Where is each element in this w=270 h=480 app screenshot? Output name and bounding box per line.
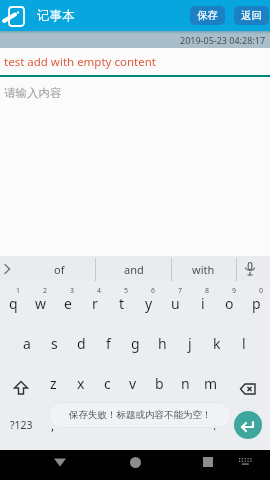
button[interactable]: , [42, 403, 64, 447]
button[interactable]: l [230, 323, 257, 363]
button[interactable]: u [162, 283, 189, 323]
button[interactable]: h [149, 323, 176, 363]
staticText: of [54, 262, 65, 277]
staticText: w [35, 294, 47, 313]
staticText: m [204, 374, 218, 393]
staticText: and [124, 262, 144, 277]
staticText: j [188, 334, 192, 353]
staticText: d [77, 334, 86, 353]
button[interactable]: . [204, 403, 226, 447]
staticText: test add with empty content [4, 54, 156, 70]
button[interactable]: of [22, 256, 96, 282]
button[interactable]: f [95, 323, 122, 363]
staticText: 9 [232, 286, 237, 296]
button[interactable]: 保存 [190, 6, 225, 25]
staticText: g [131, 334, 140, 353]
staticText: 保存失败！标题或内容不能为空！ [69, 409, 212, 421]
button[interactable]: t [108, 283, 135, 323]
button[interactable] [42, 450, 78, 480]
button[interactable]: e [54, 283, 81, 323]
staticText: y [145, 294, 153, 313]
staticText: h [158, 334, 167, 353]
button[interactable]: c [94, 363, 120, 403]
button[interactable]: s [41, 323, 68, 363]
button[interactable]: z [40, 363, 67, 403]
staticText: 3 [70, 286, 75, 296]
button[interactable]: w [27, 283, 54, 323]
staticText: 2 [43, 286, 48, 296]
staticText: b [155, 374, 164, 393]
button[interactable] [244, 262, 256, 277]
staticText: 7 [178, 286, 183, 296]
button[interactable]: p [243, 283, 270, 323]
staticText: . [213, 417, 217, 433]
button[interactable]: j [176, 323, 203, 363]
staticText: 8 [205, 286, 210, 296]
button[interactable]: and [96, 256, 172, 282]
button[interactable] [117, 450, 153, 480]
staticText: with [192, 262, 215, 277]
button[interactable]: n [172, 363, 198, 403]
button[interactable]: i [189, 283, 216, 323]
button[interactable]: r [81, 283, 108, 323]
staticText: f [106, 334, 111, 353]
staticText: 记事本 [37, 8, 75, 24]
staticText: 6 [151, 286, 156, 296]
staticText: v [129, 374, 137, 393]
staticText: 4 [97, 286, 102, 296]
staticText: 1 [16, 286, 21, 296]
staticText: q [9, 294, 18, 313]
staticText: 保存 [197, 9, 218, 22]
button[interactable]: q [0, 283, 27, 323]
button[interactable]: b [146, 363, 172, 403]
button[interactable]: v [120, 363, 146, 403]
staticText: e [64, 294, 72, 313]
button[interactable] [230, 450, 260, 480]
staticText: r [92, 294, 98, 313]
button[interactable]: o [216, 283, 243, 323]
staticText: 返回 [241, 9, 262, 22]
button[interactable]: with [172, 256, 234, 282]
staticText: k [213, 334, 221, 353]
staticText: u [171, 294, 180, 313]
staticText: 2019-05-23 04:28:17 [180, 34, 266, 46]
staticText: o [225, 294, 234, 313]
button[interactable]: 返回 [234, 6, 269, 25]
button[interactable] [64, 403, 204, 447]
staticText: ?123 [10, 418, 33, 432]
staticText: p [252, 294, 261, 313]
button[interactable] [190, 450, 226, 480]
button[interactable]: g [122, 323, 149, 363]
staticText: x [77, 374, 85, 393]
button[interactable] [4, 264, 11, 274]
button[interactable]: x [67, 363, 94, 403]
button[interactable]: y [135, 283, 162, 323]
button[interactable]: ?123 [0, 403, 42, 447]
button[interactable] [224, 363, 270, 403]
button[interactable]: d [68, 323, 95, 363]
staticText: 5 [124, 286, 129, 296]
staticText: l [242, 334, 246, 353]
staticText: t [119, 294, 125, 313]
staticText: z [50, 374, 57, 393]
button[interactable] [0, 363, 40, 403]
button[interactable]: a [13, 323, 41, 363]
staticText: c [104, 374, 111, 393]
staticText: 请输入内容 [4, 86, 62, 100]
staticText: i [201, 294, 205, 313]
staticText: , [51, 417, 55, 433]
staticText: 0 [259, 286, 264, 296]
button[interactable]: k [203, 323, 230, 363]
button[interactable] [234, 411, 262, 439]
staticText: n [181, 374, 190, 393]
staticText: s [51, 334, 58, 353]
staticText: a [23, 334, 31, 353]
button[interactable]: m [198, 363, 224, 403]
